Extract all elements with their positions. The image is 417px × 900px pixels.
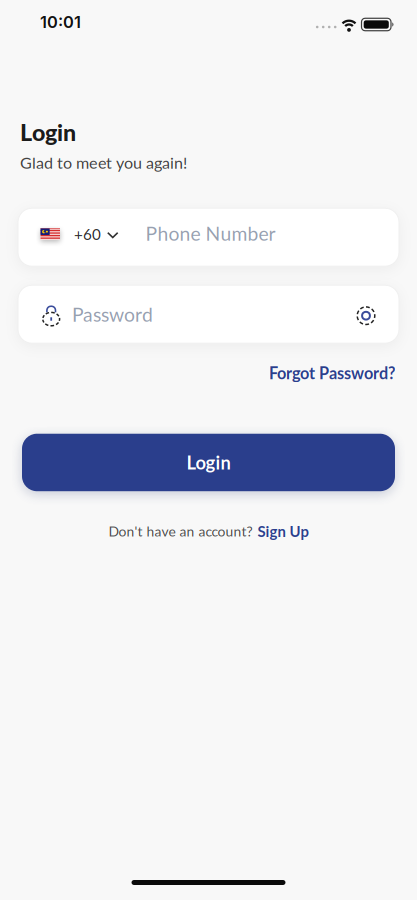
staticText: Phone Number [145, 222, 275, 245]
staticText: Don't have an account? [108, 523, 252, 539]
button[interactable]: Show password [356, 304, 376, 324]
staticText: Glad to meet you again! [20, 153, 187, 172]
staticText: 10:01 [40, 12, 81, 32]
staticText: Password [72, 303, 153, 326]
staticText: Forgot Password? [269, 363, 395, 383]
button[interactable]: Login [22, 434, 395, 491]
staticText: Login [20, 118, 76, 146]
button[interactable]: Forgot Password? [269, 363, 395, 383]
staticText: Sign Up [257, 522, 308, 540]
button[interactable]: Country code [40, 228, 118, 246]
button[interactable]: Sign Up [257, 522, 308, 540]
staticText: Login [186, 451, 230, 473]
staticText: +60 [74, 225, 101, 243]
